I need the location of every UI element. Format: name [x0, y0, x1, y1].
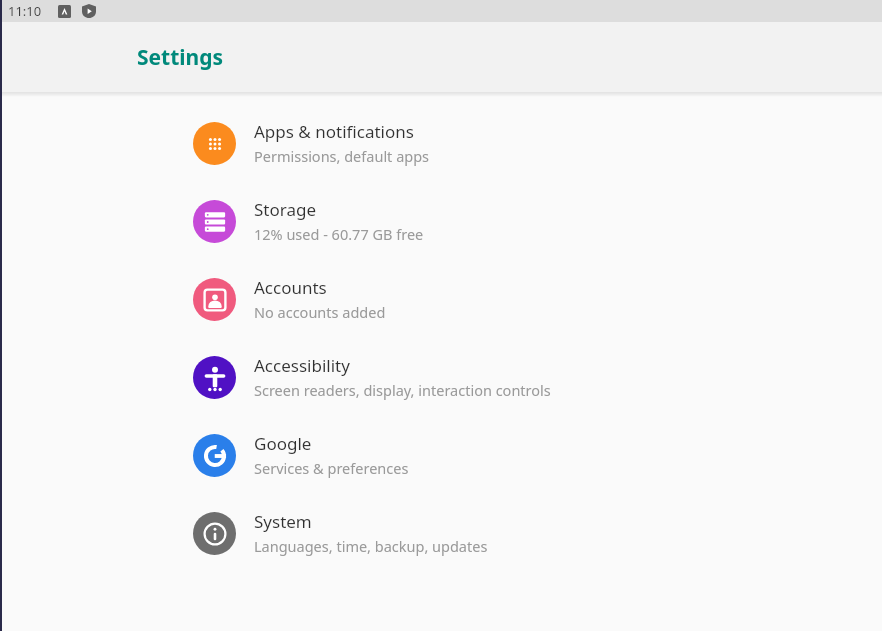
button[interactable]: Apps & notifications [0, 104, 882, 182]
staticText: Apps & notifications [254, 120, 414, 143]
staticText: Languages, time, backup, updates [254, 536, 488, 556]
staticText: 12% used - 60.77 GB free [254, 224, 424, 244]
staticText: Screen readers, display, interaction con… [254, 380, 551, 400]
button[interactable]: Storage [0, 182, 882, 260]
staticText: Accounts [254, 276, 327, 299]
staticText: Permissions, default apps [254, 146, 430, 166]
staticText: Services & preferences [254, 458, 409, 478]
staticText: No accounts added [254, 302, 386, 322]
button[interactable]: Accounts [0, 260, 882, 338]
staticText: Google [254, 432, 312, 455]
staticText: System [254, 510, 312, 533]
button[interactable]: Google [0, 416, 882, 494]
button[interactable]: Accessibility [0, 338, 882, 416]
staticText: Accessibility [254, 354, 350, 377]
button[interactable]: System [0, 494, 882, 572]
staticText: 11:10 [8, 2, 42, 20]
staticText: Storage [254, 198, 317, 221]
staticText: Settings [137, 43, 224, 72]
